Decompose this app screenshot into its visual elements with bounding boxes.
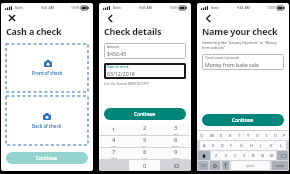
staticText: 2 <box>143 124 147 132</box>
button[interactable]: B <box>249 151 258 160</box>
staticText: Bank <box>15 5 24 10</box>
staticText: Check name (optional) <box>205 56 240 60</box>
button[interactable]: return <box>272 161 288 170</box>
button[interactable]: V <box>240 151 249 160</box>
button[interactable]: I <box>262 131 271 140</box>
staticText: W <box>210 133 214 138</box>
button[interactable]: Q <box>197 131 207 140</box>
button[interactable]: 3 <box>160 124 191 135</box>
button[interactable]: W <box>207 131 217 140</box>
button[interactable]: M <box>267 151 276 160</box>
staticText: PQRS <box>110 156 118 159</box>
button[interactable]: C <box>231 151 240 160</box>
button[interactable]: D <box>218 141 227 150</box>
button[interactable]: 5 <box>129 136 160 147</box>
button[interactable]: Voice input <box>222 161 229 170</box>
button[interactable]: Back of check <box>6 96 88 145</box>
staticText: N <box>261 153 265 158</box>
button[interactable]: 123 <box>198 161 208 170</box>
staticText: 03/12/2018 <box>107 70 135 77</box>
staticText: Money from bake sale <box>205 61 259 68</box>
staticText: Cash a check <box>6 25 62 37</box>
staticText: G <box>240 143 243 148</box>
button[interactable]: Continue <box>202 114 284 126</box>
staticText: 5 <box>143 136 147 144</box>
button[interactable]: Date on check <box>104 63 186 79</box>
staticText: D <box>221 143 224 148</box>
button[interactable]: K <box>266 141 276 150</box>
button[interactable]: Amount <box>104 43 186 59</box>
staticText: 4 <box>112 136 116 144</box>
staticText: Check details <box>104 25 162 37</box>
button[interactable]: Continue <box>6 152 88 164</box>
button[interactable]: Delete <box>160 160 191 171</box>
staticText: 100% <box>71 5 80 10</box>
staticText: V <box>243 153 246 158</box>
staticText: J <box>260 143 262 148</box>
button[interactable]: Back <box>202 12 214 24</box>
staticText: 9:41 AM <box>237 5 250 10</box>
staticText: 9:41 AM <box>41 5 54 10</box>
button[interactable]: S <box>209 141 218 150</box>
staticText: B <box>252 153 255 158</box>
button[interactable]: Front of check <box>6 44 88 92</box>
staticText: K <box>270 143 273 148</box>
staticText: Bank <box>211 5 220 10</box>
staticText: ABC <box>142 132 148 135</box>
button[interactable]: Emoji <box>210 161 220 170</box>
staticText: I <box>266 133 268 138</box>
button[interactable]: Z <box>211 151 221 160</box>
staticText: Continue <box>134 111 156 118</box>
button[interactable]: U <box>253 131 262 140</box>
button[interactable]: H <box>246 141 256 150</box>
button[interactable]: 7 <box>99 148 129 159</box>
button[interactable]: Check name (optional) <box>202 54 284 70</box>
staticText: Q <box>200 133 204 138</box>
button[interactable]: 9 <box>160 148 191 159</box>
button[interactable]: A <box>200 141 209 150</box>
staticText: Front of check <box>32 70 63 76</box>
button[interactable]: 8 <box>129 148 160 159</box>
button[interactable]: 2 <box>129 124 160 135</box>
staticText: MNO <box>172 144 179 147</box>
staticText: GHI <box>111 144 117 147</box>
button[interactable]: Close <box>6 12 18 24</box>
button[interactable]: X <box>221 151 231 160</box>
button[interactable]: P <box>280 131 289 140</box>
button[interactable]: F <box>227 141 236 150</box>
staticText: L <box>280 143 283 148</box>
staticText: T <box>238 133 241 138</box>
button[interactable]: Y <box>244 131 253 140</box>
button[interactable]: 0 <box>129 160 160 171</box>
staticText: Something like "January Paycheck" or "Mo… <box>202 40 284 50</box>
staticText: X <box>225 153 228 158</box>
staticText: TUV <box>142 156 148 159</box>
staticText: R <box>229 133 232 138</box>
button[interactable]: O <box>271 131 280 140</box>
button[interactable]: 4 <box>99 136 129 147</box>
button[interactable]: 6 <box>160 136 191 147</box>
button[interactable]: Continue <box>104 108 186 120</box>
button[interactable]: J <box>256 141 266 150</box>
button[interactable]: space <box>231 161 270 170</box>
button[interactable]: T <box>235 131 244 140</box>
button[interactable]: 1 <box>99 124 129 135</box>
button[interactable]: E <box>217 131 226 140</box>
staticText: 7 <box>112 148 116 156</box>
button[interactable]: L <box>276 141 286 150</box>
button[interactable]: R <box>226 131 235 140</box>
button[interactable]: N <box>258 151 267 160</box>
staticText: Amount <box>107 45 120 49</box>
staticText: 123 <box>201 164 206 168</box>
button[interactable]: Shift <box>198 151 210 160</box>
staticText: 8 <box>143 148 147 156</box>
staticText: Continue <box>232 117 254 124</box>
button[interactable]: Back <box>104 12 116 24</box>
staticText: 3 <box>174 124 178 132</box>
staticText: E <box>220 133 223 138</box>
staticText: JKL <box>142 144 147 147</box>
staticText: U <box>256 133 259 138</box>
button[interactable] <box>99 160 129 171</box>
button[interactable]: G <box>236 141 246 150</box>
button[interactable]: Delete <box>277 151 288 160</box>
